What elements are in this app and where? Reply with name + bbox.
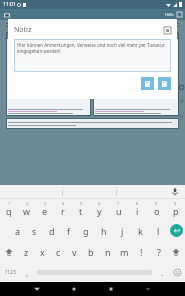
button[interactable]: a	[9, 220, 26, 241]
button[interactable]: z	[18, 241, 34, 262]
button[interactable]: Speichern	[141, 77, 154, 90]
staticText: 9	[155, 201, 158, 206]
button[interactable]: Hier können Anmerkungen, Verweise und no…	[14, 39, 171, 72]
staticText: 7	[117, 201, 120, 206]
staticText: v	[72, 246, 77, 258]
button[interactable]: Emoji	[169, 262, 185, 282]
staticText: Notiz	[14, 25, 32, 35]
button[interactable]: h	[95, 220, 113, 241]
staticText: ,	[26, 267, 29, 278]
button[interactable]: x	[34, 241, 50, 262]
staticText: 8	[136, 201, 139, 206]
button[interactable]: ?123	[0, 262, 20, 282]
staticText: q	[6, 205, 12, 217]
button[interactable]: Schließen	[164, 27, 171, 34]
button[interactable]: .	[155, 262, 169, 282]
staticText: 4	[62, 201, 65, 206]
staticText: l	[157, 225, 160, 237]
button[interactable]: s	[26, 220, 43, 241]
button[interactable]: 0	[166, 199, 185, 220]
button[interactable]: f	[60, 220, 77, 241]
button[interactable]: 1	[0, 199, 18, 220]
staticText: 11:01	[3, 1, 16, 8]
button[interactable]: n	[99, 241, 116, 262]
staticText: z	[24, 246, 29, 258]
staticText: o	[154, 205, 160, 217]
staticText: x	[40, 246, 45, 258]
staticText: s	[32, 225, 37, 237]
staticText: <	[180, 97, 184, 105]
staticText: b	[88, 246, 94, 258]
staticText: 1	[8, 201, 11, 206]
staticText: j	[121, 225, 124, 237]
button[interactable]: Tastatur ausblenden	[30, 282, 44, 296]
button[interactable]: 4	[54, 199, 72, 220]
staticText: c	[56, 246, 61, 258]
button[interactable]: Startbildschirm	[67, 282, 81, 296]
staticText: r	[61, 205, 65, 217]
button[interactable]: ,	[20, 262, 34, 282]
button[interactable]: d	[43, 220, 60, 241]
staticText: >	[180, 112, 184, 120]
staticText: Hilfe	[165, 12, 174, 17]
staticText: ?	[157, 246, 161, 258]
staticText: k	[138, 225, 143, 237]
button[interactable]: 6	[90, 199, 109, 220]
button[interactable]: Übersicht	[104, 282, 118, 296]
staticText: .	[161, 267, 164, 278]
button[interactable]: 8	[128, 199, 147, 220]
button[interactable]: Spracheingabe	[171, 188, 179, 196]
staticText: y	[97, 205, 102, 217]
staticText: h	[101, 225, 107, 237]
staticText: d	[49, 225, 55, 237]
staticText: g	[83, 225, 89, 237]
button[interactable]: Leerzeichen	[34, 262, 155, 282]
staticText: t	[79, 205, 83, 217]
button[interactable]: v	[66, 241, 82, 262]
button[interactable]: b	[82, 241, 99, 262]
staticText: w	[23, 205, 31, 217]
button[interactable]: Umschalt	[0, 241, 18, 262]
button[interactable]: ?	[150, 241, 167, 262]
button[interactable]: l	[149, 220, 167, 241]
button[interactable]: 7	[109, 199, 128, 220]
staticText: Hier können Anmerkungen, Verweise und no…	[17, 42, 168, 54]
staticText: p	[173, 205, 179, 217]
button[interactable]: Kopieren	[158, 77, 171, 90]
staticText: 6	[98, 201, 101, 206]
staticText: e	[42, 205, 48, 217]
button[interactable]: 9	[147, 199, 166, 220]
staticText: ?123	[5, 269, 16, 276]
button[interactable]: 3	[36, 199, 54, 220]
staticText: m	[120, 246, 129, 258]
button[interactable]: Umschalt	[167, 241, 185, 262]
staticText: u	[116, 205, 122, 217]
button[interactable]: 5	[72, 199, 90, 220]
button[interactable]: c	[50, 241, 66, 262]
staticText: f	[67, 225, 71, 237]
staticText: 5	[80, 201, 83, 206]
button[interactable]: j	[113, 220, 131, 241]
staticText: !	[140, 246, 143, 258]
button[interactable]: m	[116, 241, 133, 262]
button[interactable]: k	[131, 220, 149, 241]
button[interactable]: 2	[18, 199, 36, 220]
staticText: n	[105, 246, 111, 258]
staticText: 0	[174, 201, 177, 206]
button[interactable]: g	[77, 220, 95, 241]
button[interactable]: !	[133, 241, 150, 262]
staticText: i	[136, 205, 139, 217]
button[interactable]: Eingabe	[167, 220, 185, 241]
staticText: 2	[26, 201, 29, 206]
staticText: a	[15, 225, 21, 237]
button[interactable]: Menü	[141, 282, 155, 296]
staticText: 3	[44, 201, 47, 206]
